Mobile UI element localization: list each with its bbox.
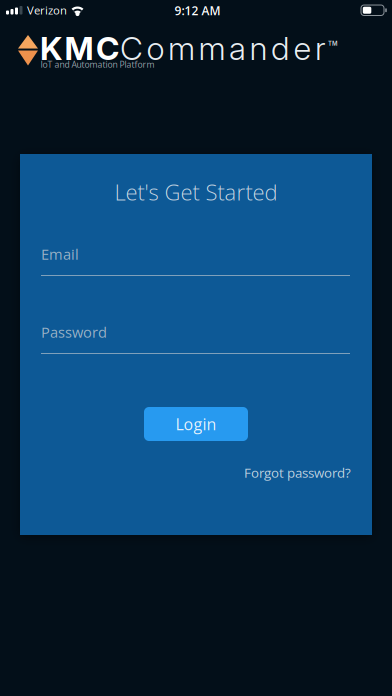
staticText: Email [41, 244, 79, 264]
staticText: IoT and Automation Platform [40, 58, 154, 70]
staticText: Forgot password? [244, 463, 351, 482]
staticText: 9:12 AM [174, 2, 220, 19]
button[interactable]: Forgot password? [244, 463, 351, 482]
staticText: TM [328, 40, 338, 47]
staticText: Verizon [27, 2, 67, 18]
button[interactable]: Email [41, 244, 350, 277]
staticText: Login [175, 413, 216, 435]
button[interactable]: Password [41, 322, 350, 355]
staticText: Let's Get Started [114, 177, 277, 207]
staticText: KMC [40, 29, 119, 68]
staticText: Password [41, 322, 107, 342]
button[interactable]: Login [144, 407, 248, 441]
staticText: Commander [120, 29, 325, 68]
